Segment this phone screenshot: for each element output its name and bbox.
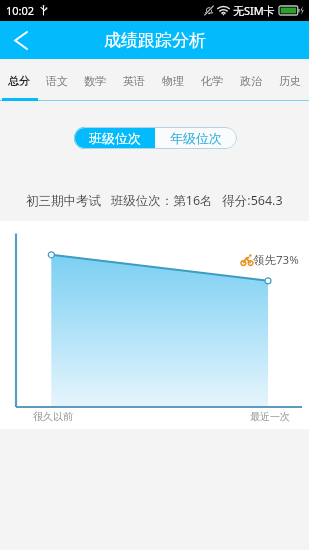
staticText: 班级位次 xyxy=(89,130,141,146)
staticText: 数学 xyxy=(84,74,106,88)
staticText: 10:02 xyxy=(6,3,35,18)
staticText: 初三期中考试 班级位次：第16名 得分:564.3 xyxy=(26,192,283,209)
staticText: 化学 xyxy=(201,74,223,88)
button[interactable]: 化学 xyxy=(192,59,231,101)
button[interactable]: 政治 xyxy=(231,59,270,101)
staticText: 总分 xyxy=(8,74,30,88)
button[interactable]: 总分 xyxy=(0,59,38,101)
button[interactable]: 年级位次 xyxy=(155,127,237,149)
staticText: 很久以前 xyxy=(33,410,73,423)
button[interactable]: Back xyxy=(0,21,40,59)
staticText: 无SIM卡 xyxy=(233,3,275,18)
button[interactable]: 英语 xyxy=(114,59,153,101)
staticText: 历史 xyxy=(279,74,301,88)
button[interactable]: 物理 xyxy=(153,59,192,101)
staticText: 成绩跟踪分析 xyxy=(104,30,206,51)
button[interactable]: 数学 xyxy=(76,59,114,101)
button[interactable]: 语文 xyxy=(38,59,76,101)
staticText: 最近一次 xyxy=(250,410,290,423)
staticText: 年级位次 xyxy=(170,130,222,146)
staticText: 物理 xyxy=(162,74,184,88)
staticText: 领先73% xyxy=(253,252,299,268)
button[interactable]: 历史 xyxy=(270,59,309,101)
staticText: 政治 xyxy=(240,74,262,88)
staticText: 语文 xyxy=(46,74,68,88)
button[interactable]: 班级位次 xyxy=(74,127,155,149)
staticText: 英语 xyxy=(123,74,145,88)
